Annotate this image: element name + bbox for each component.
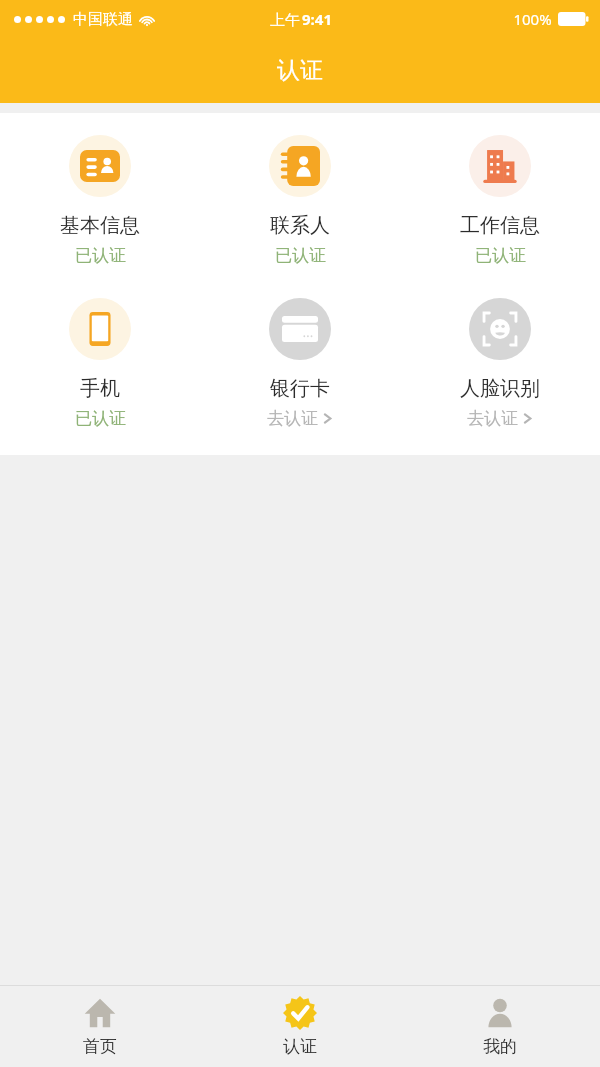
staticText: 去认证 — [267, 408, 318, 429]
button[interactable]: 工作信息 — [400, 135, 600, 266]
button[interactable]: 我的 — [400, 988, 600, 1065]
staticText: 首页 — [83, 1036, 117, 1057]
staticText: 上午 — [268, 9, 302, 29]
staticText: 基本信息 — [60, 213, 140, 238]
button[interactable]: 认证 — [200, 988, 400, 1065]
staticText: 手机 — [80, 376, 120, 401]
staticText: 9:41 — [302, 9, 332, 29]
staticText: 已认证 — [75, 408, 126, 429]
button[interactable]: 基本信息 — [0, 135, 200, 266]
staticText: 认证 — [283, 1036, 317, 1057]
staticText: 100% — [513, 9, 552, 29]
staticText: 人脸识别 — [460, 376, 540, 401]
other: 我的 — [483, 996, 517, 1030]
staticText: 联系人 — [270, 213, 330, 238]
button[interactable]: 人脸识别 — [400, 298, 600, 429]
staticText: 中国联通 — [73, 10, 133, 29]
button[interactable]: 手机 — [0, 298, 200, 429]
staticText: 已认证 — [275, 245, 326, 266]
staticText: 已认证 — [75, 245, 126, 266]
staticText: 认证 — [277, 56, 323, 85]
staticText: 我的 — [483, 1036, 517, 1057]
staticText: 银行卡 — [270, 376, 330, 401]
other: 认证 — [283, 996, 317, 1030]
staticText: 已认证 — [475, 245, 526, 266]
other: 首页 — [83, 996, 117, 1030]
staticText: 工作信息 — [460, 213, 540, 238]
button[interactable]: 首页 — [0, 988, 200, 1065]
button[interactable]: 联系人 — [200, 135, 400, 266]
button[interactable]: 银行卡 — [200, 298, 400, 429]
staticText: 去认证 — [467, 408, 518, 429]
